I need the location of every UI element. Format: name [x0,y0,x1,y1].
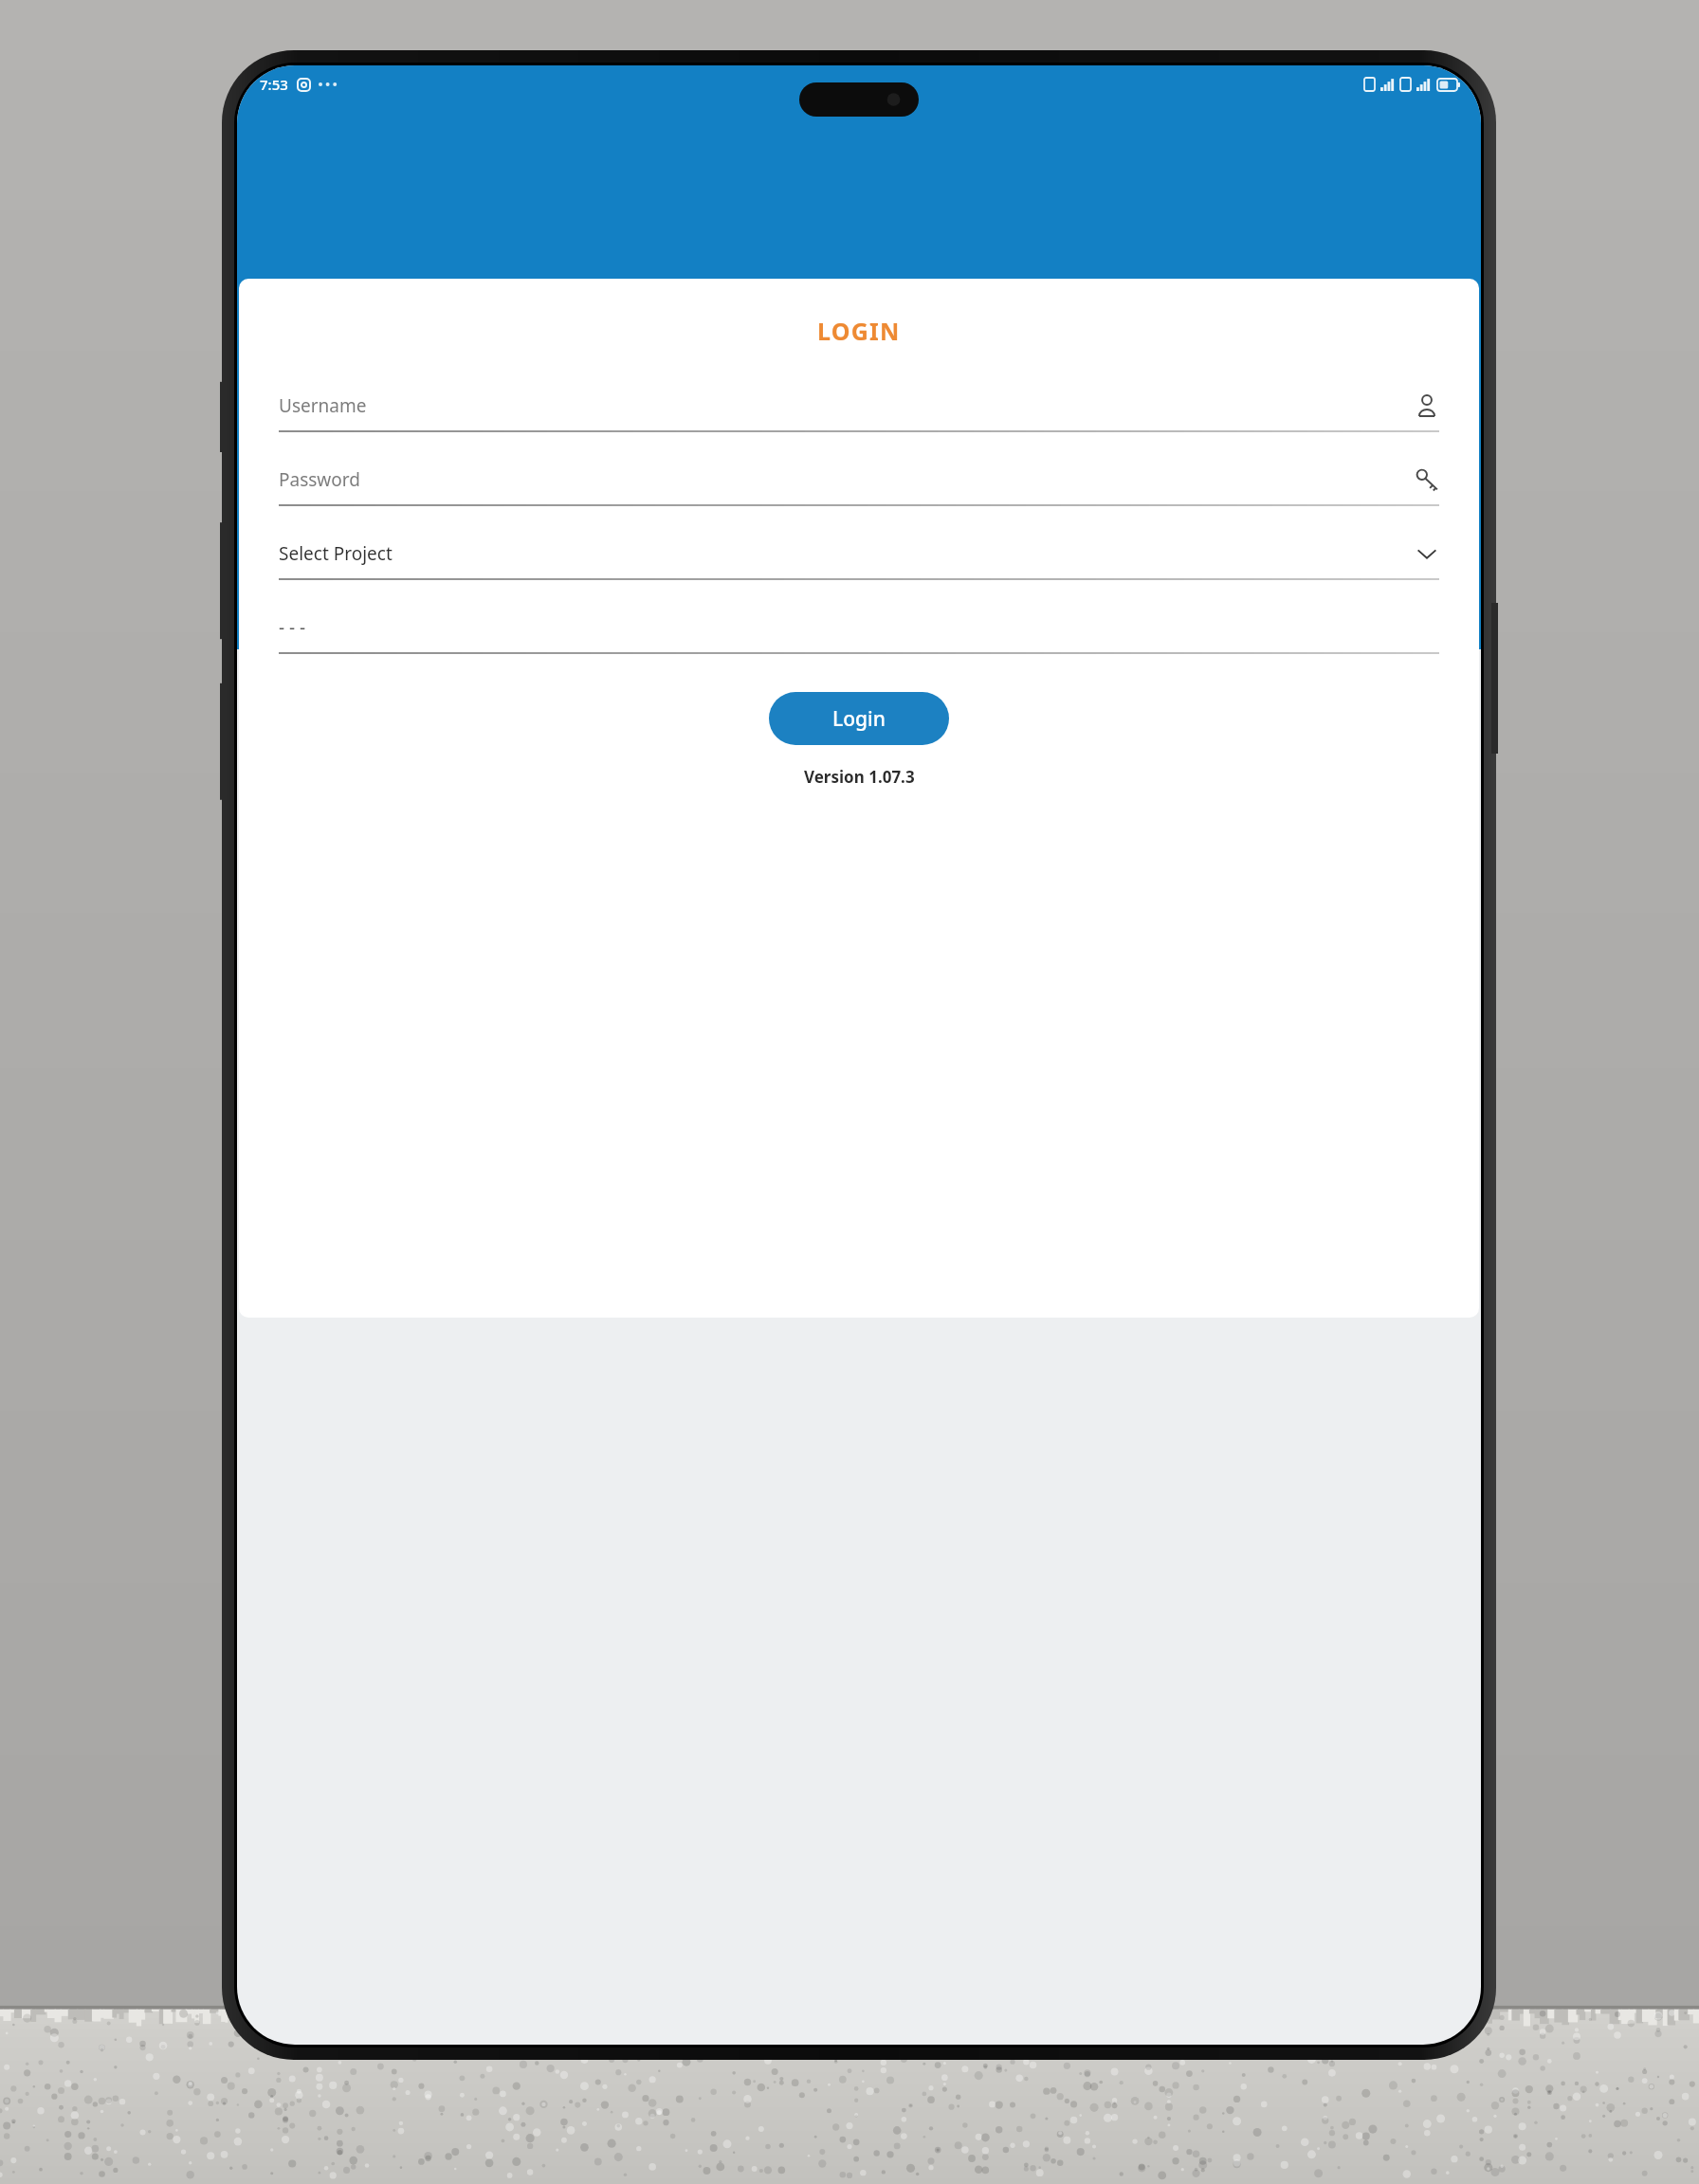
button[interactable]: Password [279,461,1439,506]
staticText: Properties [811,578,883,595]
button[interactable]: Username [279,387,1439,432]
staticText: Version 1.07.3 [804,766,915,788]
staticText: Login [832,705,886,733]
staticText: 7:53 [260,75,288,94]
staticText: Password [279,467,1415,492]
staticText: LOGIN [817,315,901,347]
button[interactable]: - - - [279,609,1439,654]
button[interactable]: Select project [279,535,1439,580]
staticText: Select Project [279,541,1415,566]
button[interactable]: Login [769,692,949,745]
staticText: Username [279,393,1415,418]
staticText: - - - [279,615,1439,640]
